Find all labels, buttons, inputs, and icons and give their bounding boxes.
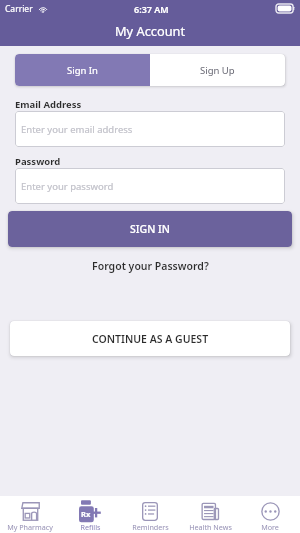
staticText: Sign Up <box>200 64 235 77</box>
button[interactable]: Enter your email address <box>15 111 285 147</box>
staticText: My Account <box>115 22 186 39</box>
button[interactable]: CONTINUE AS A GUEST <box>10 321 290 356</box>
staticText: 6:37 AM <box>134 3 169 15</box>
staticText: Enter your password <box>21 180 114 193</box>
staticText: CONTINUE AS A GUEST <box>92 332 209 346</box>
staticText: More <box>261 522 279 532</box>
button[interactable]: SIGN IN <box>8 211 292 247</box>
staticText: Health News <box>189 522 232 532</box>
button[interactable]: My Pharmacy <box>0 496 60 533</box>
button[interactable]: Sign Up <box>150 54 285 86</box>
staticText: Enter your email address <box>21 123 133 136</box>
staticText: Refills <box>80 522 101 532</box>
button[interactable]: Reminders <box>120 496 180 533</box>
button[interactable]: Rx <box>60 496 120 533</box>
staticText: Reminders <box>132 522 169 532</box>
staticText: SIGN IN <box>130 222 170 236</box>
staticText: Rx <box>81 509 91 519</box>
button[interactable]: Health News <box>180 496 240 533</box>
button[interactable]: Forgot your Password? <box>92 259 209 273</box>
button[interactable]: More <box>240 496 300 533</box>
staticText: Email Address <box>15 98 82 111</box>
staticText: My Pharmacy <box>7 522 53 532</box>
staticText: Password <box>15 155 61 168</box>
staticText: Sign In <box>67 64 98 77</box>
button[interactable]: Enter your password <box>15 168 285 204</box>
staticText: Carrier <box>5 3 33 15</box>
button[interactable]: Sign In <box>15 54 150 86</box>
